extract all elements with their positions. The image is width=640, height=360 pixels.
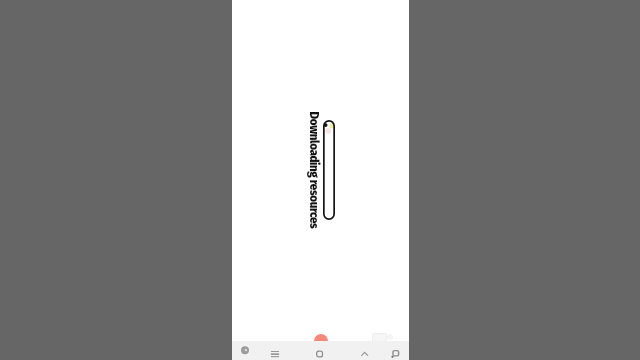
button[interactable]: Back xyxy=(356,341,374,360)
button[interactable]: Rotate screen xyxy=(386,341,404,360)
staticText: Downloading resources xyxy=(306,111,320,228)
button[interactable]: Accessibility xyxy=(236,341,254,360)
button[interactable]: Recents xyxy=(266,341,284,360)
button[interactable]: Home xyxy=(311,341,329,360)
button[interactable]: Primary action xyxy=(314,334,328,348)
